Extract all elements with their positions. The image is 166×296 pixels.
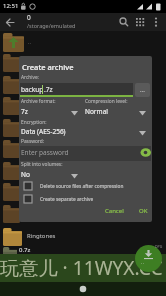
staticText: /storage/emulated: [27, 22, 76, 29]
button[interactable]: [119, 17, 129, 27]
staticText: Cancel: [105, 207, 124, 215]
button[interactable]: [20, 146, 151, 161]
staticText: Data (AES-256): [21, 127, 66, 136]
staticText: · ·: [141, 261, 145, 266]
button[interactable]: [6, 18, 15, 27]
staticText: Encryption:: [21, 119, 47, 126]
button[interactable]: [140, 147, 151, 158]
staticText: backup: [21, 85, 44, 94]
button[interactable]: Delete source files after compression: [21, 180, 151, 192]
staticText: 7z: [21, 107, 28, 116]
staticText: 12:51: [3, 2, 19, 10]
button[interactable]: [135, 245, 162, 272]
button[interactable]: [136, 18, 145, 27]
staticText: Password:: [21, 138, 44, 145]
staticText: Create separate archive: [40, 196, 94, 203]
staticText: No: [21, 170, 30, 179]
staticText: DPG: [155, 244, 163, 249]
staticText: Compression level:: [85, 98, 128, 105]
staticText: 玩意儿 · 11WYX.CC: [0, 254, 163, 280]
staticText: Delete source files after compression: [40, 183, 124, 190]
staticText: Split into volumes:: [21, 161, 63, 168]
button[interactable]: Create separate archive: [21, 193, 151, 205]
staticText: ...: [140, 86, 145, 94]
staticText: .7z: [44, 85, 53, 94]
staticText: OK: [139, 207, 148, 215]
staticText: Enter password: [21, 148, 69, 157]
staticText: Archive:: [21, 74, 39, 81]
staticText: ..: [28, 38, 31, 45]
staticText: 0: [27, 13, 31, 22]
button[interactable]: [153, 17, 159, 28]
button[interactable]: [20, 83, 133, 97]
staticText: Archive format:: [21, 98, 56, 105]
button[interactable]: [20, 126, 150, 138]
staticText: Ringtones: [27, 232, 56, 240]
button[interactable]: Cancel: [97, 203, 131, 218]
staticText: 0.7z: [19, 246, 31, 254]
button[interactable]: [20, 106, 80, 118]
staticText: Normal: [85, 107, 108, 116]
button[interactable]: OK: [134, 203, 152, 218]
button[interactable]: [20, 169, 80, 181]
button[interactable]: [0, 226, 166, 248]
button[interactable]: [0, 32, 166, 53]
button[interactable]: ...: [135, 83, 150, 97]
staticText: Create archive: [22, 62, 74, 72]
